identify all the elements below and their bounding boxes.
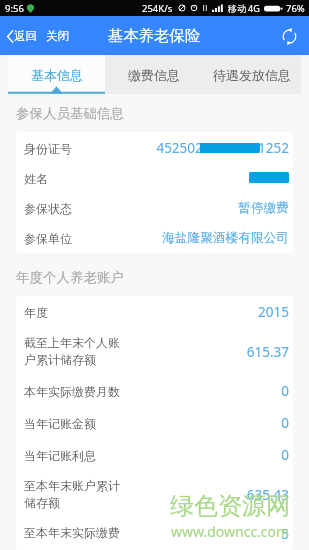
- staticText: 至本年末实际缴费月数: [24, 525, 120, 543]
- button[interactable]: 缴费信息: [105, 55, 203, 94]
- staticText: 参保单位: [24, 231, 120, 246]
- staticText: 9:56: [5, 2, 24, 15]
- staticText: 暂停缴费: [238, 200, 289, 216]
- staticText: 本年实际缴费月数: [24, 384, 120, 399]
- staticText: 身份证号: [24, 141, 120, 156]
- staticText: www.downcc.com: [171, 522, 290, 541]
- staticText: 5: [281, 525, 289, 543]
- staticText: 76%: [286, 2, 305, 15]
- staticText: 基本信息: [31, 67, 83, 83]
- staticText: 基本养老保险: [108, 26, 201, 45]
- staticText: 关闭: [46, 29, 69, 43]
- staticText: 姓名: [24, 171, 120, 186]
- button[interactable]: 返回: [6, 22, 38, 50]
- staticText: 至本年末账户累计储存额: [24, 478, 120, 511]
- staticText: 当年记账利息: [24, 448, 120, 463]
- staticText: 参保人员基础信息: [16, 105, 124, 122]
- staticText: 待遇发放信息: [213, 67, 291, 83]
- button[interactable]: 关闭: [45, 22, 70, 50]
- staticText: 0: [281, 446, 289, 464]
- staticText: 0: [281, 414, 289, 432]
- staticText: 返回: [14, 29, 37, 43]
- staticText: 截至上年末个人账户累计储存额: [24, 335, 120, 368]
- staticText: 移动: [228, 3, 246, 14]
- staticText: 2015: [258, 303, 289, 321]
- staticText: 615.37: [246, 343, 289, 361]
- staticText: 254K/s: [142, 2, 173, 15]
- staticText: 0: [281, 382, 289, 400]
- staticText: 452502XXXXXXX1252: [156, 139, 289, 157]
- staticText: 当年记账金额: [24, 416, 120, 431]
- staticText: 年度个人养老账户: [16, 269, 124, 286]
- button[interactable]: 待遇发放信息: [203, 55, 301, 94]
- staticText: 635.43: [246, 486, 289, 504]
- staticText: 4G: [248, 2, 260, 14]
- staticText: 绿色资源网: [170, 491, 290, 521]
- staticText: 参保状态: [24, 201, 120, 216]
- staticText: 海盐隆聚酒楼有限公司: [162, 230, 289, 246]
- staticText: 年度: [24, 305, 120, 320]
- button[interactable]: Refresh: [275, 22, 303, 50]
- staticText: 缴费信息: [128, 67, 180, 83]
- button[interactable]: 基本信息: [8, 55, 105, 94]
